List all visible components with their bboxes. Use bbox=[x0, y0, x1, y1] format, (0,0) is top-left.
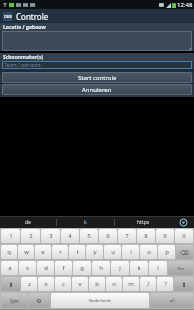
staticText: d bbox=[44, 264, 48, 272]
staticText: k bbox=[137, 264, 141, 272]
button[interactable]: y bbox=[86, 245, 103, 259]
button[interactable]: Annuleren bbox=[2, 84, 192, 95]
button[interactable]: j bbox=[111, 261, 129, 275]
button[interactable]: x bbox=[38, 277, 54, 291]
staticText: ? bbox=[164, 280, 167, 288]
staticText: y bbox=[93, 248, 97, 256]
staticText: j bbox=[119, 264, 121, 272]
button[interactable]: Expand suggestions bbox=[172, 216, 194, 228]
staticText: m bbox=[128, 280, 134, 288]
button[interactable]: Backspace bbox=[176, 245, 193, 259]
button[interactable]: k bbox=[57, 216, 114, 228]
staticText: o bbox=[147, 248, 151, 256]
staticText: h bbox=[99, 264, 103, 272]
button[interactable]: w bbox=[18, 245, 34, 259]
staticText: q bbox=[7, 248, 11, 256]
staticText: Team / persoon bbox=[4, 62, 41, 69]
staticText: e bbox=[41, 248, 45, 256]
staticText: Locatie / gebouw bbox=[3, 24, 46, 31]
button[interactable]: Enter bbox=[150, 293, 193, 308]
button[interactable]: 6 bbox=[99, 229, 117, 243]
staticText: p bbox=[165, 248, 169, 256]
button[interactable]: u bbox=[104, 245, 121, 259]
button[interactable]: de bbox=[0, 216, 56, 228]
button[interactable]: r bbox=[52, 245, 68, 259]
button[interactable]: v bbox=[72, 277, 88, 291]
button[interactable]: 5 bbox=[80, 229, 98, 243]
button[interactable]: g bbox=[73, 261, 91, 275]
staticText: 7 bbox=[125, 232, 129, 240]
button[interactable]: 7 bbox=[118, 229, 136, 243]
button[interactable]: Ger. bbox=[168, 261, 193, 275]
staticText: 9 bbox=[163, 232, 167, 240]
button[interactable]: b bbox=[89, 277, 105, 291]
staticText: a bbox=[8, 264, 12, 272]
staticText: DKS bbox=[4, 14, 12, 19]
staticText: ⬆ bbox=[181, 281, 187, 288]
staticText: f bbox=[62, 264, 65, 272]
staticText: x bbox=[44, 280, 48, 288]
staticText: 5 bbox=[87, 232, 91, 240]
staticText: l bbox=[157, 264, 159, 272]
button[interactable]: https bbox=[115, 216, 172, 228]
staticText: ,! bbox=[146, 280, 150, 288]
button[interactable]: Shift bbox=[174, 277, 193, 291]
button[interactable]: ,! bbox=[140, 277, 156, 291]
staticText: ⌫ bbox=[180, 249, 189, 256]
button[interactable]: 9 bbox=[156, 229, 174, 243]
button[interactable]: k bbox=[130, 261, 148, 275]
button[interactable]: d bbox=[37, 261, 54, 275]
button[interactable]: Keyboard settings bbox=[28, 293, 50, 308]
button[interactable]: 4 bbox=[61, 229, 79, 243]
button[interactable]: e bbox=[35, 245, 51, 259]
staticText: c bbox=[62, 280, 65, 288]
staticText: u bbox=[111, 248, 115, 256]
staticText: https bbox=[137, 219, 150, 226]
button[interactable]: t bbox=[69, 245, 85, 259]
staticText: k bbox=[84, 219, 87, 226]
button[interactable]: s bbox=[19, 261, 36, 275]
button[interactable]: Sym bbox=[1, 293, 27, 308]
button[interactable]: ? bbox=[157, 277, 173, 291]
button[interactable]: q bbox=[1, 245, 17, 259]
staticText: ⚙ bbox=[36, 297, 42, 304]
button[interactable]: h bbox=[92, 261, 110, 275]
button[interactable]: Shift bbox=[1, 277, 20, 291]
button[interactable]: p bbox=[158, 245, 175, 259]
staticText: s bbox=[26, 264, 29, 272]
button[interactable]: Start controle bbox=[2, 72, 192, 83]
button[interactable]: f bbox=[55, 261, 72, 275]
button[interactable]: l bbox=[149, 261, 167, 275]
staticText: de bbox=[25, 219, 31, 226]
staticText: ⏎ bbox=[169, 297, 175, 304]
staticText: 1 bbox=[9, 232, 13, 240]
button[interactable]: 3 bbox=[41, 229, 60, 243]
button[interactable]: 2 bbox=[21, 229, 40, 243]
staticText: Annuleren bbox=[82, 86, 112, 94]
staticText: g bbox=[80, 264, 84, 272]
button[interactable]: i bbox=[122, 245, 139, 259]
staticText: Start controle bbox=[78, 74, 117, 82]
staticText: ⬆ bbox=[8, 281, 14, 288]
button[interactable]: m bbox=[123, 277, 139, 291]
staticText: 12:48 bbox=[177, 1, 193, 9]
button[interactable]: z bbox=[21, 277, 37, 291]
button[interactable]: 0 bbox=[175, 229, 193, 243]
staticText: 0 bbox=[182, 232, 186, 240]
staticText: Schoonmaker(s) bbox=[3, 54, 44, 61]
button[interactable]: o bbox=[140, 245, 157, 259]
button[interactable] bbox=[2, 31, 192, 51]
staticText: 2 bbox=[29, 232, 33, 240]
staticText: 8 bbox=[144, 232, 148, 240]
button[interactable]: n bbox=[106, 277, 122, 291]
button[interactable]: 8 bbox=[137, 229, 155, 243]
staticText: v bbox=[78, 280, 82, 288]
button[interactable]: Nederlands bbox=[51, 293, 149, 308]
button[interactable]: a bbox=[1, 261, 18, 275]
staticText: Controle bbox=[16, 11, 49, 22]
button[interactable]: c bbox=[55, 277, 71, 291]
button[interactable]: Team / persoon bbox=[2, 61, 192, 69]
staticText: b bbox=[95, 280, 99, 288]
button[interactable]: 1 bbox=[1, 229, 20, 243]
staticText: 4 bbox=[68, 232, 72, 240]
